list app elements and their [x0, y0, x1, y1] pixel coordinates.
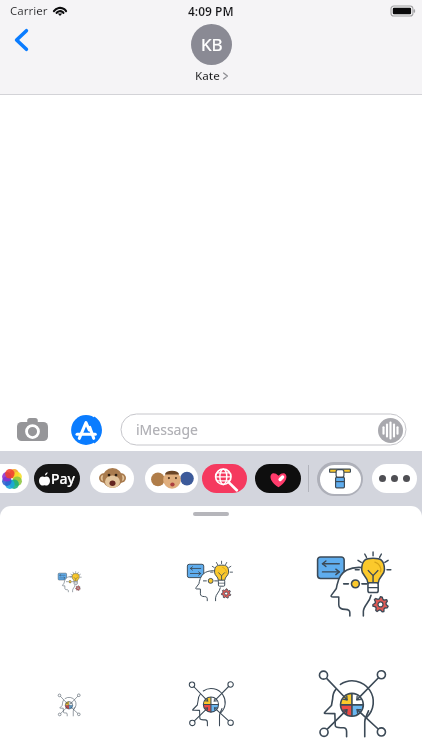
button[interactable]: Idea sticker medium: [187, 560, 232, 605]
button[interactable]: Idea sticker small: [58, 571, 81, 594]
staticText: KB: [201, 33, 223, 56]
button[interactable]: Mindmap sticker small: [57, 693, 82, 718]
button[interactable]: Digital Touch: [255, 464, 301, 493]
button[interactable]: Record audio: [377, 417, 403, 443]
staticText: Pay: [51, 469, 75, 488]
button[interactable]: Sticker pack: [317, 462, 363, 496]
button[interactable]: #images: [202, 464, 247, 493]
button[interactable]: KB: [191, 24, 232, 84]
staticText: Kate: [195, 68, 220, 84]
button[interactable]: Back: [0, 21, 44, 65]
button[interactable]: More apps: [372, 464, 417, 493]
staticText: 4:09 PM: [188, 3, 234, 19]
button[interactable]: Mindmap sticker large: [316, 668, 391, 743]
button[interactable]: Memoji stickers: [145, 464, 198, 493]
staticText: Carrier: [10, 3, 48, 19]
button[interactable]: Photos: [0, 464, 29, 493]
button[interactable]: Apple Pay: [34, 464, 80, 493]
button[interactable]: iMessage: [121, 414, 406, 445]
button[interactable]: Mindmap sticker medium: [187, 680, 237, 730]
button[interactable]: App Store: [70, 414, 102, 446]
button[interactable]: Camera: [16, 413, 49, 446]
button[interactable]: Idea sticker large: [317, 550, 390, 623]
staticText: iMessage: [136, 420, 198, 439]
button[interactable]: Memoji: [90, 464, 134, 493]
